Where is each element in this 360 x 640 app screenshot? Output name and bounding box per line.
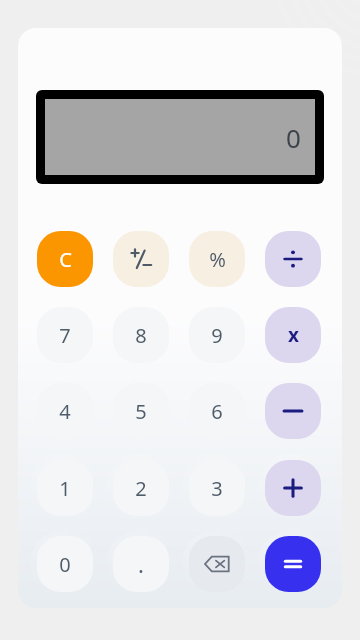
staticText: 0 — [59, 551, 71, 578]
button[interactable]: Minus — [265, 383, 321, 439]
button[interactable]: Plus — [265, 460, 321, 516]
button[interactable]: Equals — [265, 536, 321, 592]
button[interactable]: 4 — [37, 383, 93, 439]
button[interactable]: 6 — [189, 383, 245, 439]
button[interactable]: 8 — [113, 307, 169, 363]
staticText: 2 — [135, 475, 147, 502]
button[interactable] — [113, 231, 169, 287]
button[interactable]: 1 — [37, 460, 93, 516]
staticText: 4 — [59, 398, 71, 425]
staticText: 3 — [211, 475, 223, 502]
button[interactable]: 7 — [37, 307, 93, 363]
button[interactable]: x — [265, 307, 321, 363]
button[interactable]: . — [113, 536, 169, 592]
button[interactable]: 3 — [189, 460, 245, 516]
staticText: 7 — [59, 322, 71, 349]
staticText: % — [209, 246, 226, 273]
button[interactable]: 5 — [113, 383, 169, 439]
staticText: . — [138, 549, 144, 579]
button[interactable]: Backspace — [189, 536, 245, 592]
button[interactable]: 2 — [113, 460, 169, 516]
button[interactable]: % — [189, 231, 245, 287]
staticText: 1 — [59, 475, 71, 502]
staticText: 8 — [135, 322, 147, 349]
staticText: C — [59, 246, 72, 273]
button[interactable]: C — [37, 231, 93, 287]
staticText: 9 — [211, 322, 223, 349]
button[interactable]: 9 — [189, 307, 245, 363]
button[interactable]: 0 — [37, 536, 93, 592]
staticText: x — [288, 322, 299, 348]
button[interactable]: Divide — [265, 231, 321, 287]
staticText: 5 — [135, 398, 147, 425]
staticText: 0 — [286, 120, 301, 155]
staticText: 6 — [211, 398, 223, 425]
